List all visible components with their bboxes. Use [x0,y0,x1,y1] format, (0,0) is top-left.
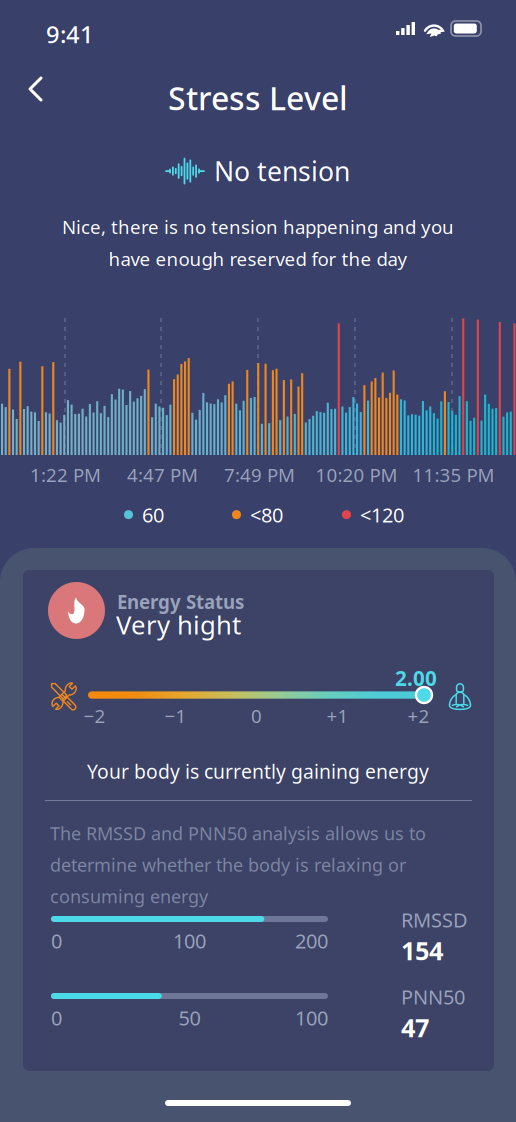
staticText: −1 [164,703,186,728]
staticText: have enough reserved for the day [108,246,407,271]
staticText: The RMSSD and PNN50 analysis allows us t… [50,821,426,845]
staticText: Stress Level [168,76,348,120]
staticText: 10:20 PM [315,462,397,487]
staticText: 47 [401,1010,429,1045]
staticText: No tension [214,153,350,189]
staticText: PNN50 [401,983,465,1010]
staticText: 100 [295,1004,328,1031]
staticText: 154 [401,933,443,968]
staticText: 2.00 [395,664,437,692]
staticText: +2 [407,703,429,728]
staticText: Nice, there is no tension happening and … [62,214,454,239]
staticText: 9:41 [46,18,94,50]
staticText: 60 [142,501,164,528]
staticText: 0 [251,703,262,728]
staticText: 100 [173,927,206,954]
staticText: 1:22 PM [30,462,101,487]
staticText: 7:49 PM [224,462,295,487]
staticText: 0 [51,927,62,954]
staticText: <80 [250,501,283,528]
staticText: −2 [83,703,105,728]
staticText: <120 [360,501,404,528]
staticText: determine whether the body is relaxing o… [50,852,406,877]
staticText: 4:47 PM [127,462,198,487]
staticText: 0 [51,1004,62,1031]
staticText: 200 [295,927,328,954]
staticText: 50 [178,1004,200,1031]
staticText: RMSSD [401,906,468,933]
staticText: Very hight [116,607,241,642]
staticText: 11:35 PM [412,462,494,487]
staticText: consuming energy [50,884,208,908]
staticText: Your body is currently gaining energy [87,758,429,784]
staticText: Energy Status [117,589,244,614]
button[interactable]: Back [12,62,60,116]
staticText: +1 [326,703,348,728]
